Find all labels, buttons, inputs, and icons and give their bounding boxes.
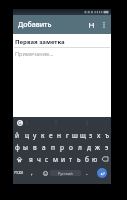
button[interactable]: г [63, 129, 71, 141]
staticText: г [66, 131, 69, 140]
staticText: э [105, 143, 109, 152]
staticText: ю [92, 155, 98, 164]
staticText: Первая заметка [15, 38, 65, 46]
button[interactable]: . [81, 165, 92, 181]
staticText: ч [37, 155, 41, 164]
button[interactable]: ч [35, 153, 43, 165]
button[interactable]: у [31, 129, 39, 141]
button[interactable]: т [67, 153, 75, 165]
button[interactable]: ы [21, 141, 30, 153]
staticText: Русский [58, 171, 73, 176]
button[interactable]: х [95, 129, 103, 141]
button[interactable]: м [51, 153, 59, 165]
button[interactable]: ц [22, 129, 31, 141]
button[interactable]: а [39, 141, 48, 153]
button[interactable]: в [30, 141, 39, 153]
staticText: G [18, 120, 22, 126]
staticText: ф [15, 143, 20, 152]
staticText: щ [80, 131, 86, 140]
button[interactable]: й [13, 129, 22, 141]
staticText: м [53, 155, 58, 164]
staticText: и [61, 155, 66, 164]
staticText: , [31, 169, 33, 177]
staticText: р [60, 143, 64, 152]
button[interactable]: ?123 [13, 165, 24, 181]
staticText: ы [23, 143, 28, 152]
button[interactable]: н [55, 129, 63, 141]
button[interactable]: Русский [50, 170, 81, 176]
button[interactable]: Emoji [40, 165, 50, 181]
button[interactable]: и [59, 153, 67, 165]
staticText: Добавить [18, 20, 84, 30]
button[interactable]: ь [75, 153, 83, 165]
staticText: ъ [105, 131, 110, 140]
staticText: л [78, 143, 82, 152]
button[interactable]: Backspace [99, 153, 111, 165]
button[interactable]: ш [71, 129, 79, 141]
button[interactable]: р [57, 141, 66, 153]
staticText: ь [77, 155, 81, 164]
button[interactable]: Save [84, 18, 98, 32]
staticText: о [69, 143, 73, 152]
button[interactable]: з [87, 129, 95, 141]
staticText: в [33, 143, 37, 152]
button[interactable]: б [83, 153, 91, 165]
button[interactable]: ю [91, 153, 99, 165]
button[interactable]: я [26, 153, 35, 165]
staticText: я [29, 155, 33, 164]
button[interactable]: щ [79, 129, 87, 141]
staticText: е [49, 131, 53, 140]
button[interactable]: Shift [13, 153, 26, 165]
button[interactable]: с [43, 153, 51, 165]
staticText: ж [95, 143, 100, 152]
staticText: й [15, 131, 20, 140]
button[interactable]: п [48, 141, 57, 153]
staticText: з [89, 131, 93, 140]
staticText: ш [72, 131, 78, 140]
staticText: ?123 [14, 170, 24, 176]
button[interactable]: ф [13, 141, 21, 153]
staticText: а [42, 143, 46, 152]
button[interactable]: э [102, 141, 111, 153]
button[interactable]: д [84, 141, 93, 153]
staticText: н [57, 131, 61, 140]
staticText: с [45, 155, 49, 164]
staticText: п [51, 143, 55, 152]
button[interactable]: е [47, 129, 55, 141]
button[interactable]: к [39, 129, 47, 141]
staticText: к [41, 131, 45, 140]
staticText: б [85, 155, 89, 164]
button[interactable]: о [66, 141, 75, 153]
button[interactable]: л [75, 141, 84, 153]
staticText: ц [25, 131, 29, 140]
button[interactable]: ъ [103, 129, 111, 141]
staticText: у [33, 131, 37, 140]
staticText: т [69, 155, 73, 164]
button[interactable]: ж [93, 141, 102, 153]
staticText: х [97, 131, 101, 140]
staticText: д [87, 143, 91, 152]
button[interactable]: , [24, 165, 40, 181]
button[interactable]: Enter [92, 165, 111, 181]
staticText: Примечание... [15, 50, 54, 57]
button[interactable]: Google [13, 117, 26, 129]
button[interactable]: More options [98, 19, 109, 30]
staticText: . [86, 169, 88, 177]
